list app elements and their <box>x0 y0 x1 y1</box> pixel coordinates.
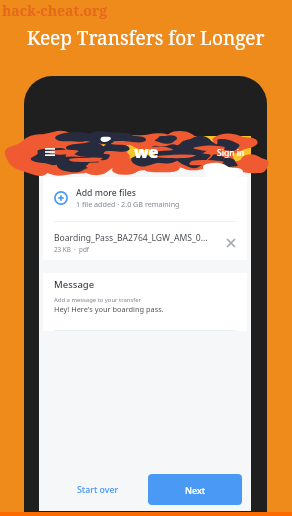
button[interactable]: Next <box>148 474 242 505</box>
staticText: 23 KB · pdf <box>54 245 89 254</box>
staticText: we <box>134 141 159 163</box>
staticText: 1 file added · 2.0 GB remaining <box>76 199 180 209</box>
button[interactable]: Boarding_Pass_BA2764_LGW_AMS_0... <box>43 222 247 260</box>
button[interactable]: Menu <box>40 142 60 162</box>
button[interactable]: Remove file <box>221 233 241 253</box>
staticText: Sign in <box>217 147 245 159</box>
button[interactable]: Sign in <box>217 147 245 159</box>
staticText: Message <box>54 278 95 291</box>
staticText: Next <box>185 484 206 496</box>
staticText: Add a message to your transfer <box>54 296 142 304</box>
staticText: Start over <box>77 484 119 496</box>
staticText: Keep Transfers for Longer <box>27 25 265 51</box>
button[interactable]: Start over <box>67 478 129 502</box>
staticText: hack-cheat.org <box>2 1 108 20</box>
staticText: Boarding_Pass_BA2764_LGW_AMS_0... <box>54 232 208 244</box>
staticText: Hey! Here's your boarding pass. <box>54 304 164 314</box>
staticText: Add more files <box>76 187 136 199</box>
button[interactable]: Add more files <box>43 177 247 218</box>
